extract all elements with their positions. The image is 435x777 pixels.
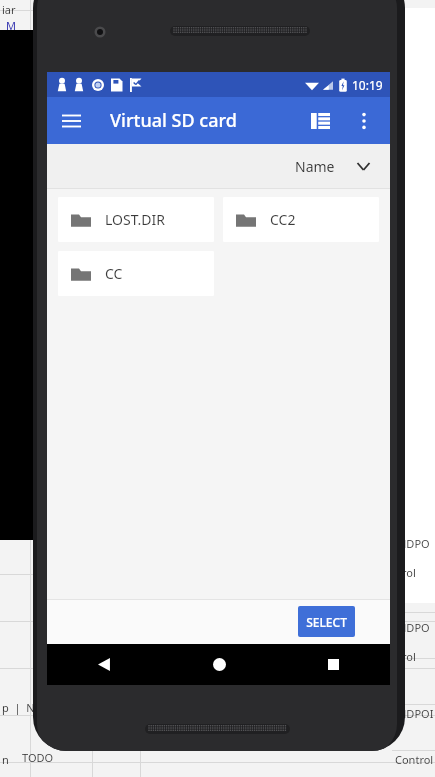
staticText: M (6, 18, 16, 33)
staticText: NDPO (398, 536, 430, 551)
button[interactable]: SELECT (298, 606, 355, 637)
button[interactable]: Back (74, 644, 134, 685)
button[interactable]: CC (58, 251, 214, 296)
staticText: SELECT (306, 614, 347, 630)
staticText: TODO (22, 750, 54, 765)
button[interactable]: Home (189, 644, 249, 685)
staticText: CC2 (270, 210, 296, 229)
staticText: n (2, 752, 9, 767)
button[interactable]: More options (342, 99, 386, 143)
staticText: Virtual SD card (110, 108, 237, 133)
staticText: trol (398, 565, 416, 580)
button[interactable]: Open navigation drawer (47, 97, 95, 144)
staticText: NDPO (398, 620, 430, 635)
button[interactable]: CC2 (223, 197, 379, 242)
button[interactable]: Switch view (298, 99, 342, 143)
staticText: LOST.DIR (105, 210, 166, 229)
staticText: trol (398, 649, 416, 664)
staticText: p | N (2, 700, 35, 715)
staticText: NDPOI (398, 706, 434, 721)
staticText: Control (395, 752, 434, 767)
staticText: Name (295, 157, 335, 176)
button[interactable]: LOST.DIR (58, 197, 214, 242)
staticText: 10:19 (352, 77, 383, 93)
button[interactable]: Name (295, 157, 378, 176)
staticText: CC (105, 264, 123, 283)
button[interactable]: Recent apps (303, 644, 363, 685)
staticText: iar (2, 2, 16, 17)
